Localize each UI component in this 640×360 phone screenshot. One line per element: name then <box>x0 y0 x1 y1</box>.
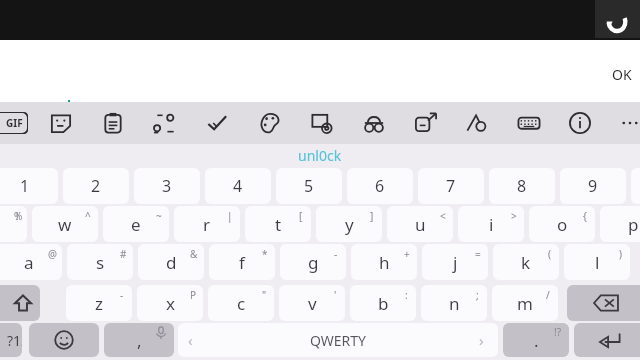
staticText: / <box>546 288 550 302</box>
staticText: , <box>137 329 142 352</box>
button[interactable]: i <box>458 206 524 242</box>
button[interactable]: Shift <box>0 285 40 321</box>
button[interactable]: j <box>422 244 488 280</box>
button[interactable]: Space <box>178 323 498 357</box>
button[interactable]: Handwriting <box>460 106 494 140</box>
staticText: @ <box>48 247 57 261</box>
button[interactable]: e <box>103 206 169 242</box>
button[interactable]: GIF <box>0 112 28 134</box>
staticText: f <box>239 251 245 274</box>
staticText: . <box>534 329 539 352</box>
button[interactable]: 9 <box>560 168 626 204</box>
staticText: r <box>203 213 211 236</box>
button[interactable]: q <box>0 206 27 242</box>
button[interactable]: 4 <box>205 168 271 204</box>
staticText: j <box>453 251 458 274</box>
button[interactable]: Clipboard <box>96 106 130 140</box>
staticText: { <box>583 209 587 223</box>
staticText: t <box>275 213 282 236</box>
button[interactable]: 8 <box>489 168 555 204</box>
staticText: % <box>14 209 23 223</box>
button[interactable]: t <box>245 206 311 242</box>
button[interactable]: Grammar check <box>200 106 234 140</box>
staticText: 9 <box>588 175 598 197</box>
staticText: = <box>475 247 481 261</box>
button[interactable]: n <box>421 285 487 321</box>
staticText: l <box>595 251 600 274</box>
staticText: ?123 <box>7 331 22 350</box>
staticText: u <box>415 213 426 236</box>
staticText: ther <box>0 103 32 126</box>
button[interactable]: More options <box>613 106 640 140</box>
button[interactable]: Enter <box>574 323 640 357</box>
staticText: ‹ <box>188 330 193 350</box>
button[interactable]: OK <box>607 62 637 86</box>
button[interactable]: s <box>67 244 133 280</box>
button[interactable]: . <box>503 323 569 357</box>
button[interactable]: w <box>32 206 98 242</box>
staticText: ' <box>334 288 337 302</box>
button[interactable]: f <box>209 244 275 280</box>
button[interactable]: 2 <box>63 168 129 204</box>
button[interactable]: b <box>350 285 416 321</box>
button[interactable]: , <box>104 323 174 357</box>
button[interactable]: o <box>529 206 595 242</box>
button[interactable]: h <box>351 244 417 280</box>
staticText: 3 <box>162 175 172 197</box>
button[interactable]: Text editing <box>305 106 339 140</box>
button[interactable]: l <box>564 244 630 280</box>
button[interactable]: 3 <box>134 168 200 204</box>
button[interactable]: Resize <box>409 106 443 140</box>
staticText: GIF <box>6 116 23 130</box>
staticText: d <box>166 251 177 274</box>
button[interactable]: 5 <box>276 168 342 204</box>
staticText: › <box>479 330 484 350</box>
staticText: + <box>404 247 410 261</box>
button[interactable]: x <box>137 285 203 321</box>
button[interactable]: y <box>316 206 382 242</box>
staticText: k <box>521 251 531 274</box>
button[interactable]: Incognito <box>357 106 391 140</box>
button[interactable]: Keyboard layout <box>512 106 546 140</box>
button[interactable]: Backspace <box>567 285 640 321</box>
button[interactable]: Theme <box>253 106 287 140</box>
staticText: i <box>489 213 494 236</box>
button[interactable]: c <box>208 285 274 321</box>
button[interactable]: Info <box>563 106 597 140</box>
button[interactable]: a <box>0 244 62 280</box>
staticText: " <box>262 288 267 302</box>
button[interactable]: z <box>66 285 132 321</box>
button[interactable]: Sticker <box>44 106 78 140</box>
staticText: : <box>405 288 408 302</box>
staticText: 7 <box>446 175 456 197</box>
staticText: 2 <box>91 175 101 197</box>
staticText: !? <box>554 325 562 339</box>
button[interactable]: 1 <box>0 168 58 204</box>
staticText: unl0ck <box>298 146 342 165</box>
staticText: ~ <box>156 209 162 223</box>
button[interactable]: ?123 <box>0 323 22 357</box>
staticText: P <box>190 288 197 302</box>
button[interactable]: d <box>138 244 204 280</box>
staticText: > <box>511 209 517 223</box>
button[interactable]: v <box>279 285 345 321</box>
button[interactable]: r <box>174 206 240 242</box>
button[interactable]: Translate <box>148 106 182 140</box>
button[interactable]: 7 <box>418 168 484 204</box>
staticText: e <box>131 213 141 236</box>
staticText: x <box>166 292 175 315</box>
button[interactable]: u <box>387 206 453 242</box>
button[interactable]: Emoji <box>29 323 99 357</box>
staticText: 8 <box>517 175 527 197</box>
button[interactable]: k <box>493 244 559 280</box>
staticText: a <box>24 251 34 274</box>
staticText: p <box>628 213 639 236</box>
button[interactable]: m <box>492 285 558 321</box>
staticText: < <box>440 209 446 223</box>
button[interactable]: 6 <box>347 168 413 204</box>
button[interactable]: Undo <box>595 0 640 38</box>
button[interactable]: p <box>600 206 640 242</box>
button[interactable]: g <box>280 244 346 280</box>
button[interactable]: unl0ck <box>265 144 375 166</box>
